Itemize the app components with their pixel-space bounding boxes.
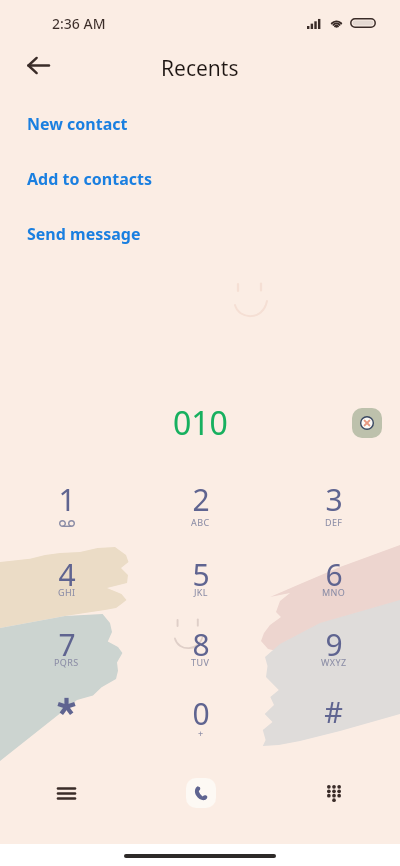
staticText: Add to contacts — [27, 168, 152, 190]
staticText: 7 — [58, 624, 76, 665]
button[interactable]: 3 — [267, 471, 400, 529]
staticText: PQRS — [54, 656, 79, 668]
staticText: ABC — [191, 516, 210, 528]
button[interactable]: 4 — [0, 546, 133, 604]
staticText: New contact — [27, 113, 128, 135]
button[interactable]: New contact — [0, 96, 400, 151]
staticText: Recents — [161, 54, 239, 83]
button[interactable]: 8 — [134, 616, 267, 674]
staticText: 9 — [325, 624, 343, 665]
button[interactable]: Back — [16, 44, 60, 86]
button[interactable]: Add to contacts — [0, 151, 400, 206]
staticText: 3 — [325, 479, 343, 520]
button[interactable]: Delete — [352, 408, 382, 438]
staticText: 5 — [192, 554, 210, 595]
staticText: 0 — [192, 693, 210, 734]
staticText: TUV — [191, 656, 210, 668]
button[interactable]: Keypad — [267, 766, 400, 820]
staticText: 6 — [325, 554, 343, 595]
button[interactable]: 5 — [134, 546, 267, 604]
button[interactable]: Call log — [0, 766, 133, 820]
button[interactable]: 6 — [267, 546, 400, 604]
staticText: WXYZ — [321, 656, 347, 668]
staticText: DEF — [325, 516, 343, 528]
button[interactable] — [0, 685, 133, 743]
staticText: JKL — [194, 586, 208, 598]
button[interactable]: Call — [134, 766, 267, 820]
staticText: GHI — [58, 586, 76, 598]
staticText: 1 — [58, 479, 76, 520]
staticText: Send message — [27, 223, 141, 245]
staticText: 010 — [173, 401, 228, 445]
button[interactable]: 9 — [267, 616, 400, 674]
staticText: 4 — [58, 554, 76, 595]
button[interactable]: 7 — [0, 616, 133, 674]
staticText: 2:36 AM — [52, 14, 106, 33]
staticText: MNO — [322, 586, 346, 598]
staticText: 2 — [192, 479, 210, 520]
button[interactable]: 1 — [0, 471, 133, 529]
button[interactable]: 2 — [134, 471, 267, 529]
staticText: 8 — [192, 624, 210, 665]
button[interactable]: # — [267, 685, 400, 743]
button[interactable]: 0 — [134, 685, 267, 743]
button[interactable]: Send message — [0, 206, 400, 261]
staticText: # — [324, 692, 343, 731]
staticText: + — [198, 727, 204, 739]
